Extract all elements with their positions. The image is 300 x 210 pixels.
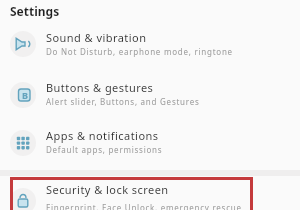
staticText: Settings	[10, 3, 60, 19]
staticText: Security & lock screen	[46, 182, 169, 197]
button[interactable]	[0, 21, 300, 68]
staticText: Buttons & gestures	[46, 80, 154, 95]
button[interactable]	[0, 120, 300, 167]
staticText: Default apps, permissions	[46, 144, 163, 155]
staticText: B	[22, 89, 28, 101]
staticText: Apps & notifications	[46, 128, 159, 143]
staticText: Do Not Disturb, earphone mode, ringtone	[46, 46, 233, 57]
button[interactable]	[0, 72, 300, 119]
staticText: Fingerprint, Face Unlock, emergency resc…	[46, 202, 242, 210]
button[interactable]	[0, 178, 300, 210]
staticText: Sound & vibration	[46, 30, 147, 45]
staticText: Alert slider, Buttons, and Gestures	[46, 96, 200, 107]
